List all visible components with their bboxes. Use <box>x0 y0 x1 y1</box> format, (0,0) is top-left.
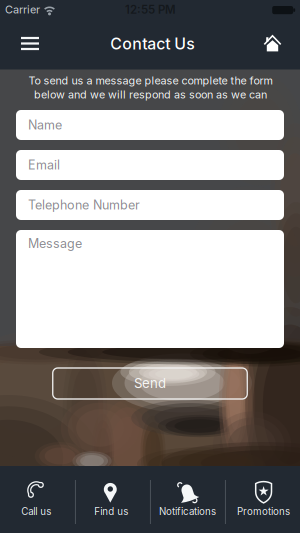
staticText: Promotions <box>237 506 290 517</box>
staticText: Notifications <box>159 506 216 517</box>
staticText: 12:55 PM <box>125 3 176 17</box>
staticText: Call us <box>21 506 51 517</box>
staticText: Find us <box>94 506 128 517</box>
staticText: Contact Us <box>110 34 195 53</box>
staticText: Carrier <box>5 3 40 16</box>
staticText: Send <box>134 375 166 391</box>
staticText: below and we will respond as soon as we … <box>34 88 267 101</box>
staticText: Telephone Number <box>28 197 140 213</box>
staticText: To send us a message please complete the… <box>28 74 272 87</box>
staticText: Name <box>28 117 62 133</box>
staticText: Message <box>28 236 82 251</box>
staticText: Email <box>28 157 60 173</box>
